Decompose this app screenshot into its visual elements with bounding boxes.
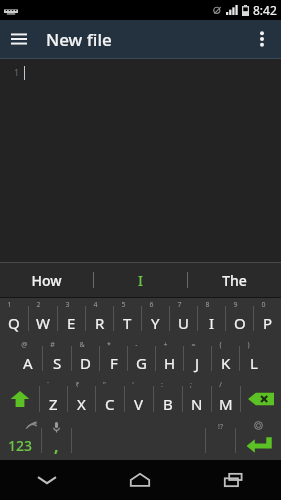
staticText: L	[250, 353, 258, 373]
button[interactable]: ₹	[68, 378, 95, 420]
button[interactable]: I	[94, 262, 187, 298]
staticText: The	[222, 271, 247, 290]
staticText: E	[67, 313, 76, 333]
staticText: `	[47, 380, 49, 390]
button[interactable]: +	[156, 338, 183, 378]
button[interactable]: Backspace	[241, 378, 281, 420]
button[interactable]: Enter	[236, 420, 281, 460]
staticText: ;	[190, 380, 192, 390]
staticText: U	[178, 313, 189, 333]
staticText: How	[31, 271, 62, 290]
staticText: 1	[7, 300, 12, 310]
button[interactable]: @	[14, 338, 42, 378]
button[interactable]: 6	[142, 298, 169, 338]
button[interactable]: 2	[29, 298, 57, 338]
button[interactable]: #	[43, 338, 71, 378]
staticText: =	[191, 340, 196, 350]
button[interactable]: 1	[0, 58, 281, 262]
staticText: X	[77, 394, 86, 414]
staticText: Z	[49, 394, 58, 414]
staticText: (	[219, 340, 222, 350]
staticText: H	[164, 353, 176, 373]
button[interactable]: ,	[42, 420, 71, 460]
staticText: I	[138, 271, 143, 290]
staticText: G	[136, 353, 147, 373]
staticText: 123	[8, 436, 33, 455]
staticText: "	[103, 380, 106, 390]
staticText: 4	[93, 300, 98, 310]
staticText: N	[191, 394, 203, 414]
staticText: F	[110, 353, 118, 373]
staticText: Y	[151, 313, 160, 333]
button[interactable]: :	[154, 378, 182, 420]
staticText: C	[105, 394, 115, 414]
staticText: ₹	[75, 380, 80, 390]
staticText: D	[80, 353, 91, 373]
staticText: Q	[8, 313, 20, 333]
staticText: K	[221, 353, 231, 373]
staticText: *	[107, 340, 111, 350]
button[interactable]: =	[184, 338, 211, 378]
staticText: ,	[54, 435, 59, 457]
staticText: 3	[65, 300, 70, 310]
staticText: +	[163, 340, 168, 350]
button[interactable]: 8	[198, 298, 225, 338]
button[interactable]: 7	[170, 298, 197, 338]
staticText: B	[163, 394, 173, 414]
staticText: '	[132, 380, 134, 390]
staticText: R	[95, 313, 105, 333]
button[interactable]: Back	[0, 460, 93, 500]
staticText: 7	[177, 300, 182, 310]
staticText: 1	[14, 66, 20, 78]
staticText: 6	[149, 300, 154, 310]
staticText: /	[219, 380, 222, 390]
staticText: W	[36, 313, 50, 333]
button[interactable]: ;	[183, 378, 211, 420]
button[interactable]: 1	[0, 298, 28, 338]
button[interactable]: More options	[243, 20, 281, 58]
button[interactable]: 123	[0, 420, 41, 460]
staticText: J	[195, 353, 200, 373]
button[interactable]: 5	[114, 298, 141, 338]
button[interactable]: Home	[93, 460, 187, 500]
staticText: A	[23, 353, 33, 373]
staticText: 2	[36, 300, 41, 310]
staticText: T	[123, 313, 132, 333]
staticText: New file	[46, 28, 112, 51]
staticText: 8:42	[253, 2, 277, 18]
button[interactable]: (	[212, 338, 239, 378]
button[interactable]: Recent apps	[187, 460, 281, 500]
button[interactable]: !?	[206, 420, 235, 460]
button[interactable]: 3	[58, 298, 85, 338]
staticText: M	[219, 394, 233, 414]
staticText: #	[50, 340, 55, 350]
button[interactable]: 9	[226, 298, 253, 338]
staticText: P	[263, 313, 273, 333]
staticText: 8	[205, 300, 210, 310]
button[interactable]: '	[125, 378, 153, 420]
button[interactable]: Shift	[0, 378, 39, 420]
staticText: &	[79, 340, 85, 350]
button[interactable]: Open navigation drawer	[0, 20, 38, 58]
button[interactable]: 4	[86, 298, 113, 338]
staticText: I	[209, 313, 215, 333]
button[interactable]: How	[0, 262, 93, 298]
button[interactable]: /	[212, 378, 240, 420]
staticText: :	[161, 380, 163, 390]
button[interactable]: The	[188, 262, 281, 298]
button[interactable]: 0	[254, 298, 281, 338]
button[interactable]: -	[128, 338, 155, 378]
staticText: O	[234, 313, 246, 333]
staticText: 9	[233, 300, 238, 310]
staticText: S	[53, 353, 62, 373]
staticText: @	[21, 340, 28, 350]
button[interactable]: `	[40, 378, 67, 420]
staticText: V	[134, 394, 144, 414]
staticText: !?	[218, 422, 223, 432]
button[interactable]: &	[72, 338, 99, 378]
button[interactable]: )	[240, 338, 267, 378]
button[interactable]: *	[100, 338, 127, 378]
button[interactable]: "	[96, 378, 124, 420]
staticText: )	[247, 340, 250, 350]
